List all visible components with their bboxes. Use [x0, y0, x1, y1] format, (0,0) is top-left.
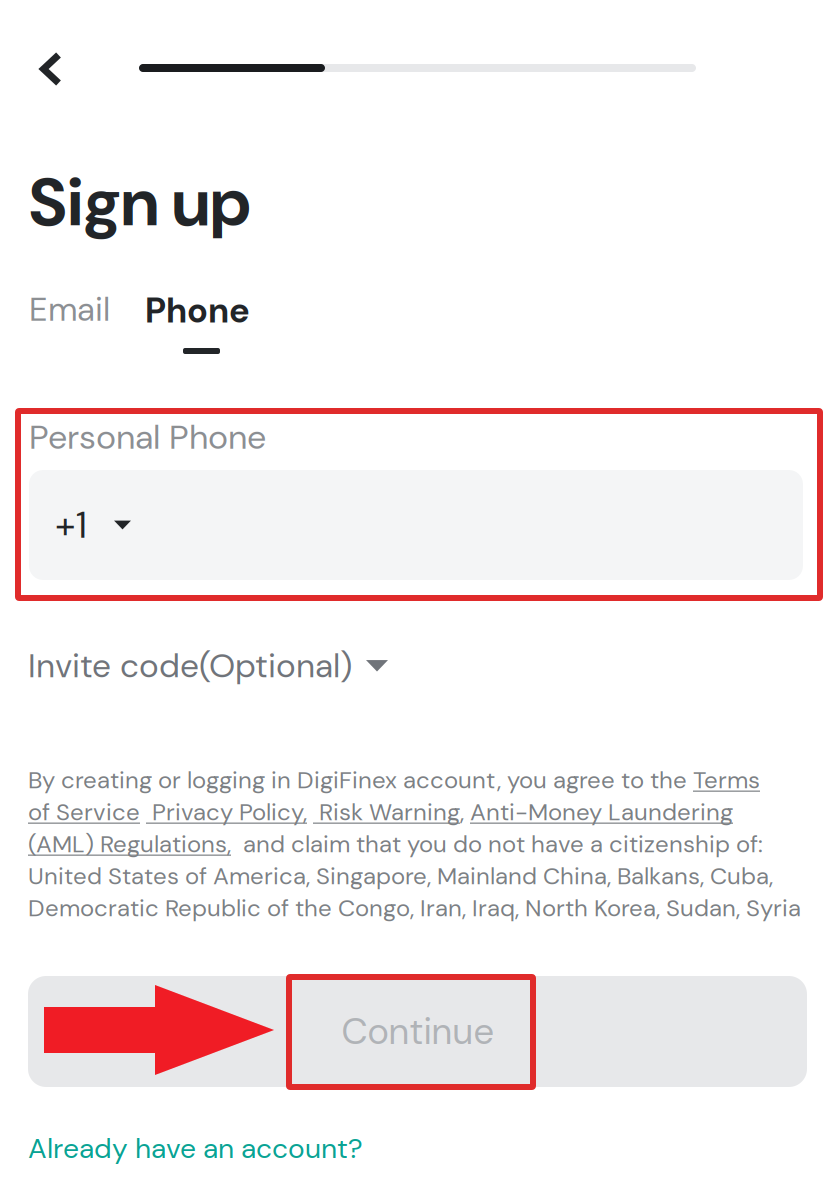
button[interactable]: +1 — [29, 470, 803, 580]
button[interactable]: Phone — [141, 288, 254, 354]
staticText: Already have an account? — [28, 1130, 363, 1167]
staticText: Invite code(Optional) — [28, 644, 352, 688]
staticText: Democratic Republic of the Congo, Iran, … — [28, 892, 801, 924]
staticText: Personal Phone — [29, 415, 266, 459]
button[interactable]: Email — [23, 282, 116, 337]
staticText: (AML) Regulations, — [28, 828, 231, 860]
staticText: Email — [29, 288, 110, 331]
staticText: and claim that you do not have a citizen… — [231, 828, 763, 860]
button[interactable]: Back — [18, 36, 84, 102]
button[interactable]: Already have an account? — [22, 1124, 369, 1173]
staticText: Privacy Policy, — [146, 796, 307, 828]
staticText: Anti-Money Laundering — [470, 796, 733, 828]
staticText: +1 — [55, 501, 87, 549]
staticText: of Service — [28, 796, 140, 828]
staticText: , — [460, 796, 470, 828]
staticText: Terms — [693, 764, 760, 796]
staticText: By creating or logging in DigiFinex acco… — [28, 764, 693, 796]
button[interactable]: Invite code(Optional) — [28, 644, 388, 688]
staticText: Phone — [145, 288, 250, 333]
staticText: Continue — [341, 1008, 493, 1055]
staticText: Sign up — [29, 159, 251, 246]
staticText: United States of America, Singapore, Mai… — [28, 860, 773, 892]
button[interactable]: Continue — [28, 976, 807, 1087]
staticText: Risk Warning — [313, 796, 460, 828]
